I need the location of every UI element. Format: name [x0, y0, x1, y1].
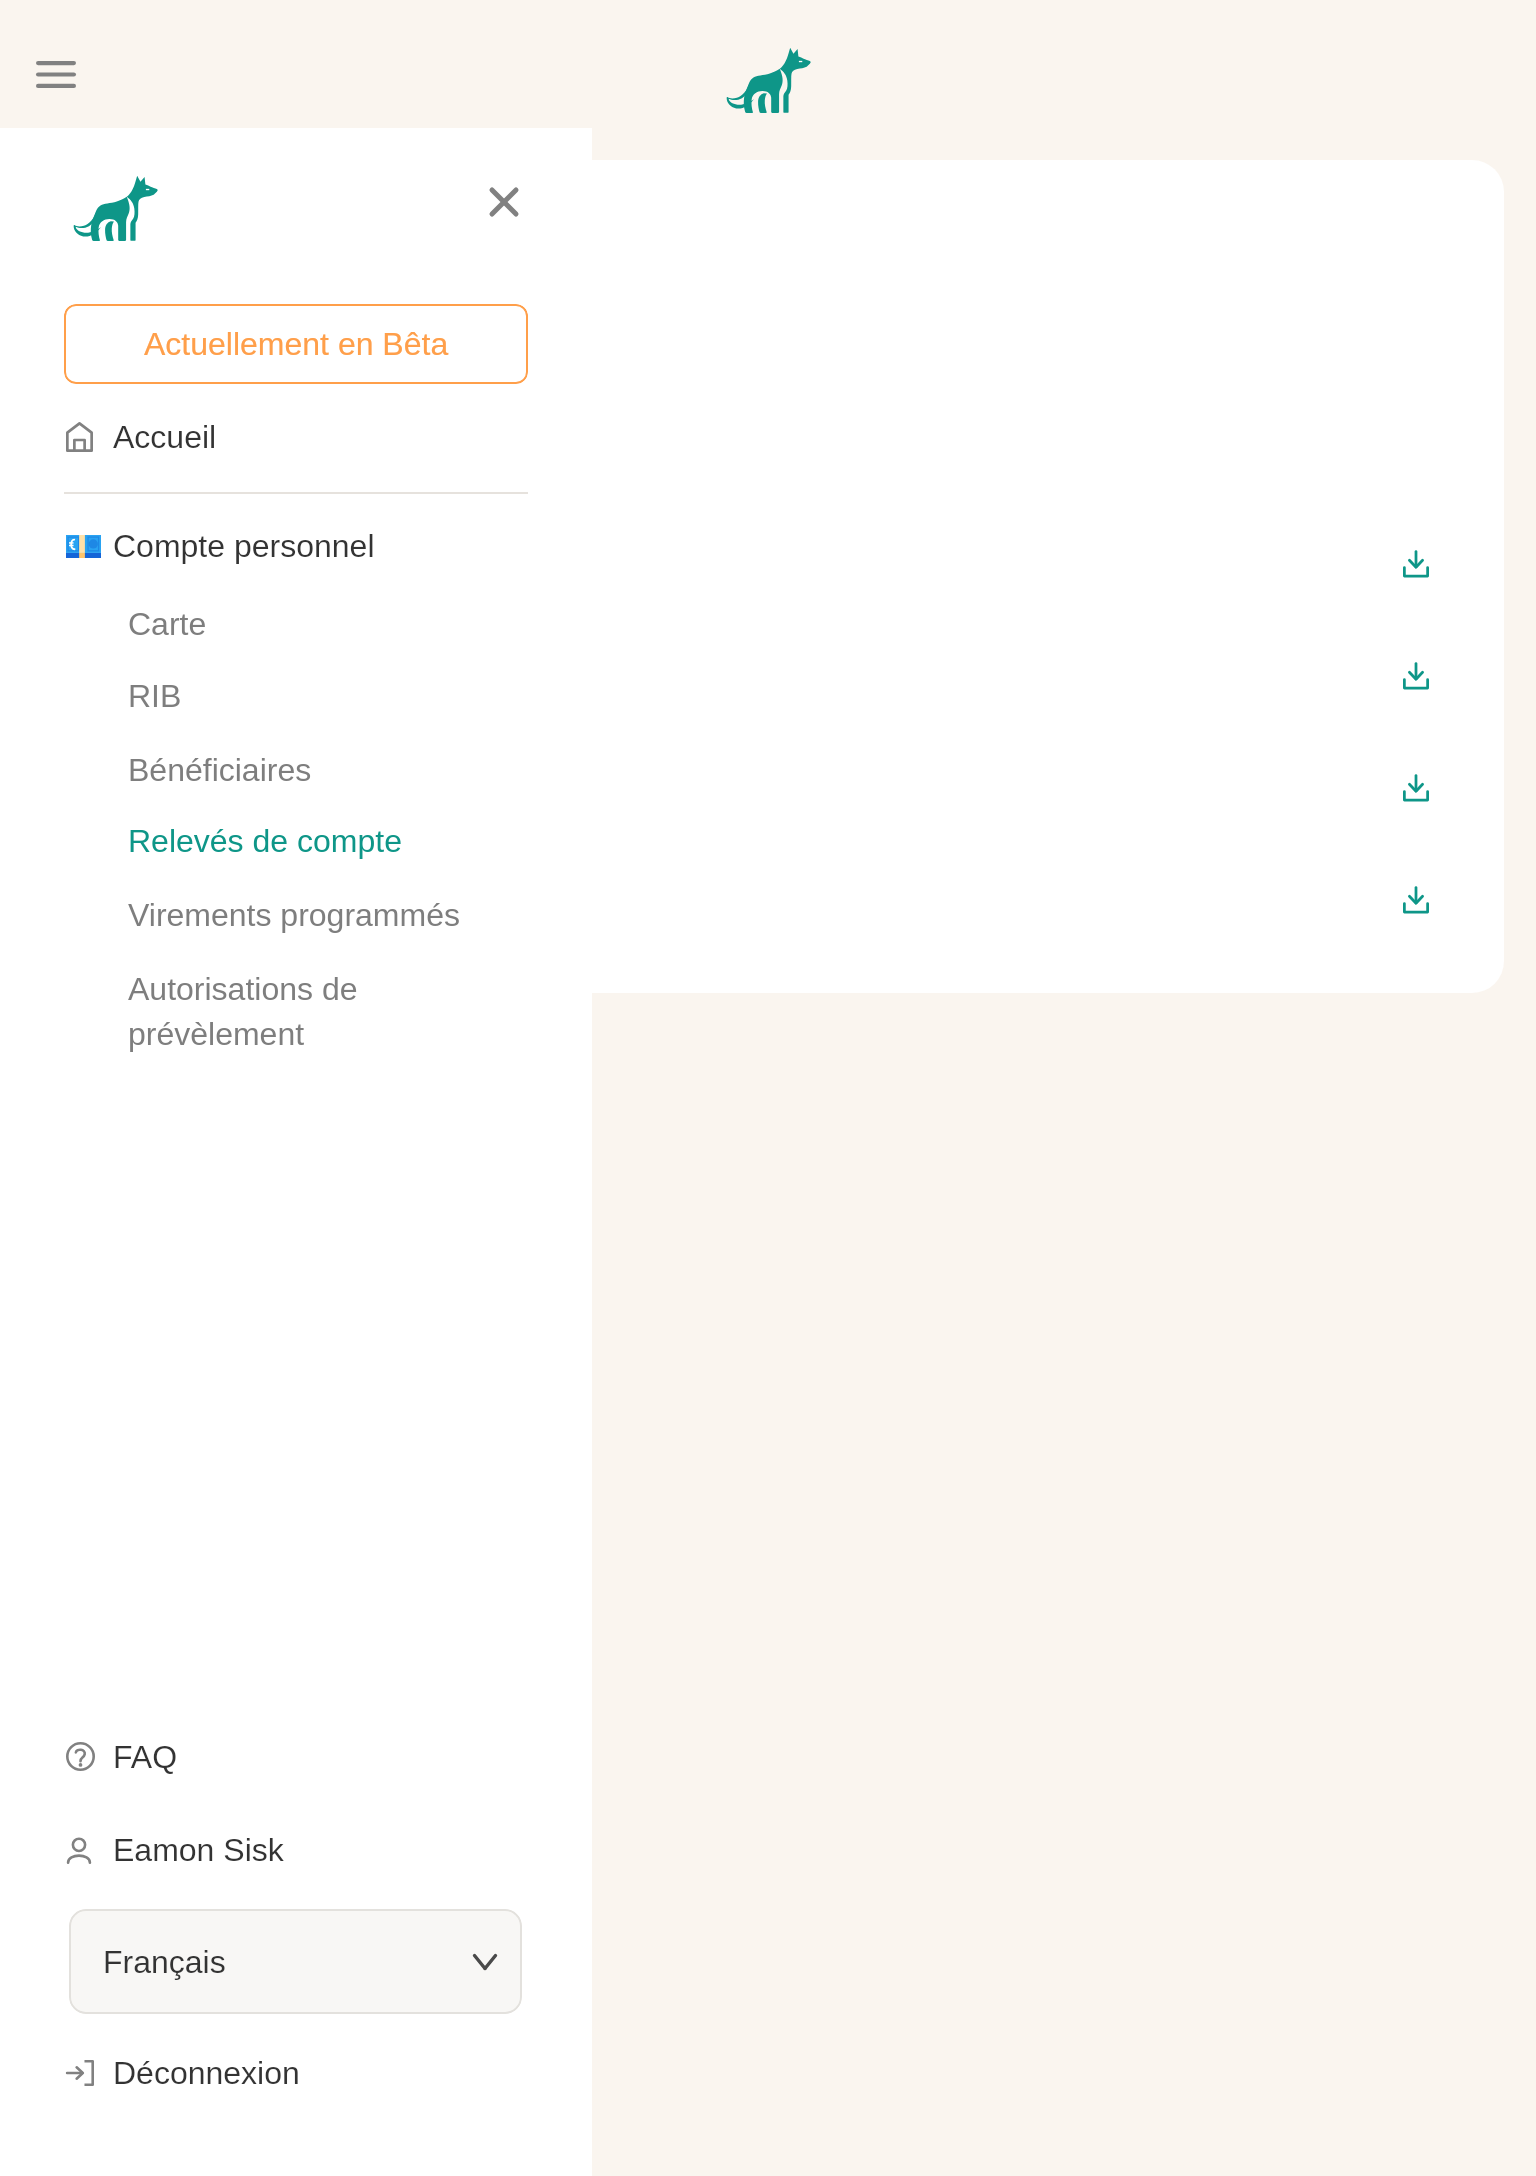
- staticText: Autorisations de prévèlement: [128, 971, 428, 1052]
- staticText: RIB: [128, 678, 182, 714]
- staticText: Carte: [128, 606, 207, 642]
- button[interactable]: Bénéficiaires: [128, 743, 526, 797]
- staticText: Bénéficiaires: [128, 752, 312, 788]
- button[interactable]: Compte personnel: [66, 512, 526, 580]
- button[interactable]: Accueil: [66, 406, 526, 468]
- staticText: FAQ: [113, 1739, 178, 1775]
- button[interactable]: RIB: [128, 669, 526, 723]
- staticText: Déconnexion: [113, 2055, 300, 2091]
- button[interactable]: Ouvrir le menu: [20, 40, 92, 108]
- button[interactable]: Télécharger le relevé: [1402, 550, 1430, 578]
- button[interactable]: Autorisations de prévèlement: [128, 963, 428, 1059]
- button[interactable]: Télécharger le relevé: [1402, 886, 1430, 914]
- button[interactable]: Relevés de compte: [128, 814, 526, 868]
- staticText: Virements programmés: [128, 897, 460, 933]
- staticText: Français: [103, 1944, 226, 1980]
- staticText: Actuellement en Bêta: [144, 326, 449, 362]
- button[interactable]: Virements programmés: [128, 888, 526, 942]
- button[interactable]: Carte: [128, 597, 526, 651]
- button[interactable]: Déconnexion: [66, 2042, 526, 2104]
- button[interactable]: Français: [69, 1909, 522, 2014]
- button[interactable]: FAQ: [66, 1726, 526, 1788]
- staticText: Compte personnel: [113, 528, 375, 564]
- button[interactable]: Télécharger le relevé: [1402, 662, 1430, 690]
- staticText: Relevés de compte: [128, 823, 402, 859]
- staticText: Eamon Sisk: [113, 1832, 284, 1868]
- button[interactable]: Fermer le menu: [468, 166, 540, 238]
- staticText: Accueil: [113, 419, 217, 455]
- button[interactable]: Actuellement en Bêta: [64, 304, 528, 384]
- button[interactable]: Eamon Sisk: [66, 1819, 526, 1881]
- button[interactable]: Télécharger le relevé: [1402, 774, 1430, 802]
